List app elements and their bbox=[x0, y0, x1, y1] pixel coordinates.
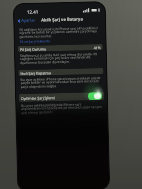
staticText: Hızlı Şarj Kapatma bbox=[20, 70, 51, 76]
staticText: Telefonunuz şu anda %41 şarj olmuş durum… bbox=[20, 51, 101, 65]
staticText: Optimize Şarj İşlemi bbox=[21, 95, 55, 101]
staticText: 12.41 bbox=[27, 8, 39, 15]
button[interactable]: Pil Şarj Durumu bbox=[18, 44, 103, 52]
staticText: Pil sağlığını korumak için iPhone şarj o… bbox=[19, 25, 101, 39]
staticText: Bu ayar etkinleştirildiğinde iPhone şarj… bbox=[21, 101, 102, 115]
button[interactable]: Optimize Şarj İşlemi bbox=[19, 92, 104, 102]
other: Back bbox=[17, 19, 21, 23]
staticText: Pil Şarj Durumu bbox=[20, 46, 47, 52]
staticText: Bu ayar açıkken iPhone gece boyunca seks… bbox=[20, 75, 102, 89]
button[interactable]: Back bbox=[14, 16, 38, 25]
button[interactable]: Optimize şarj işlemi bbox=[88, 92, 102, 100]
button[interactable]: Pil ve Şarj Hakkında bbox=[18, 38, 53, 43]
staticText: Akıllı Şarj ve Batarya bbox=[41, 16, 83, 23]
staticText: 41% bbox=[94, 45, 101, 50]
staticText: Ayarlar bbox=[21, 18, 36, 24]
button[interactable]: Hızlı Şarj Kapatma bbox=[18, 68, 103, 76]
